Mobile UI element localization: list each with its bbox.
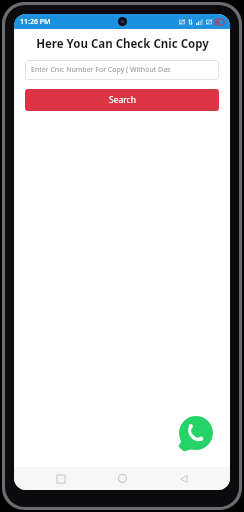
button[interactable]: Back bbox=[169, 467, 199, 490]
staticText: Enter Cnic Number For Copy ( Without Das bbox=[31, 65, 171, 75]
button[interactable]: Search bbox=[25, 89, 219, 111]
button[interactable]: Enter Cnic Number For Copy ( Without Das bbox=[25, 60, 219, 80]
button[interactable]: Home bbox=[107, 467, 137, 490]
staticText: Here You Can Check Cnic Copy bbox=[36, 36, 209, 52]
button[interactable]: Chat on WhatsApp bbox=[174, 411, 218, 455]
staticText: 11:26 PM bbox=[20, 17, 51, 27]
staticText: Search bbox=[109, 94, 136, 106]
button[interactable]: Recent apps bbox=[46, 467, 76, 490]
